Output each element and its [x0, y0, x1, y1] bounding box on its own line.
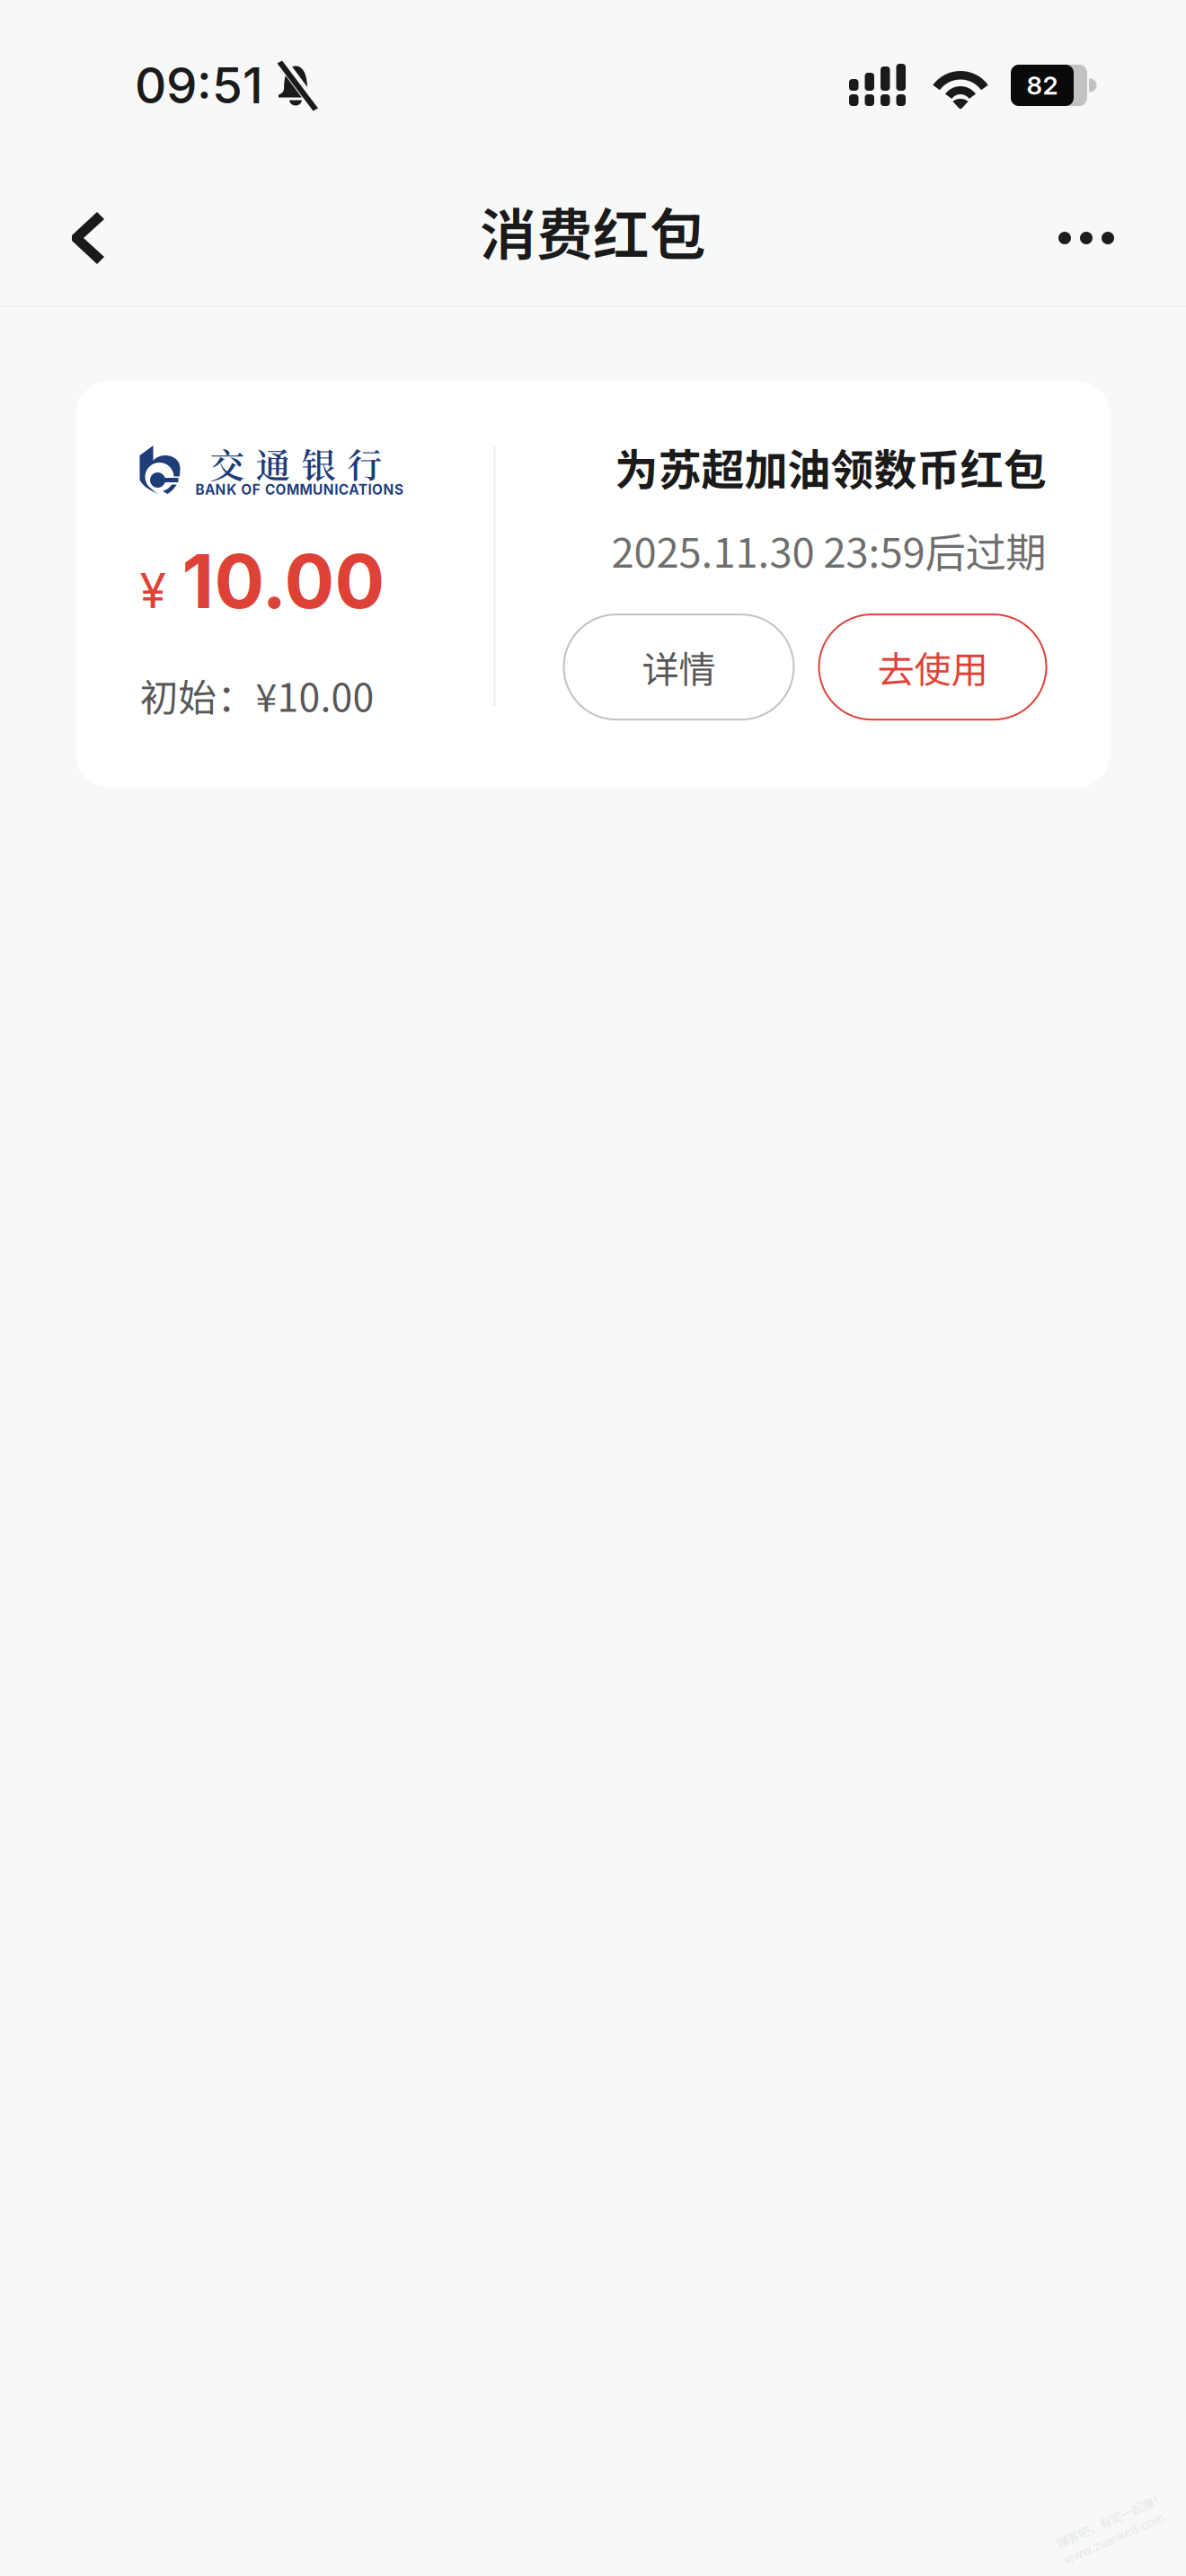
staticText: 交通银行	[210, 438, 382, 488]
staticText: 09:51	[135, 56, 263, 115]
button[interactable]: More options	[1037, 210, 1136, 266]
button[interactable]: 详情	[564, 614, 794, 720]
button[interactable]: 去使用	[819, 614, 1046, 720]
staticText: BANK OF COMMUNICATIONS	[195, 481, 403, 498]
staticText: www.zuanke8.com	[1053, 2520, 1162, 2534]
staticText: ¥	[140, 562, 166, 620]
staticText: 详情	[642, 640, 716, 694]
staticText: 去使用	[877, 640, 988, 694]
staticText: 赚客吧，有奖一起赚！	[1053, 2500, 1170, 2517]
staticText: 为苏超加油领数币红包	[615, 436, 1046, 498]
staticText: 消费红包	[480, 190, 706, 272]
button[interactable]: Back	[49, 190, 128, 286]
staticText: 82	[1027, 70, 1058, 101]
staticText: 2025.11.30 23:59后过期	[611, 520, 1046, 579]
staticText: 10.00	[182, 536, 385, 626]
staticText: 初始：¥10.00	[140, 667, 374, 723]
